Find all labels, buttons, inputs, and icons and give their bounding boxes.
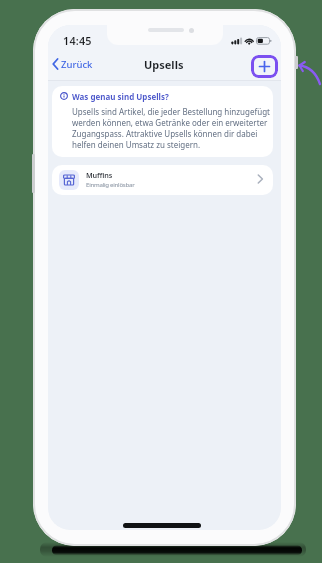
- staticText: Muffins: [86, 170, 113, 180]
- button[interactable]: [251, 55, 278, 78]
- staticText: Upsells: [144, 57, 184, 72]
- staticText: Zurück: [61, 58, 93, 71]
- staticText: Einmalig einlösbar: [86, 180, 135, 188]
- staticText: Upsells sind Artikel, die jeder Bestellu…: [72, 106, 270, 150]
- button[interactable]: Muffins: [52, 165, 273, 195]
- button[interactable]: Zurück: [50, 56, 98, 72]
- staticText: Was genau sind Upsells?: [72, 91, 169, 102]
- staticText: 14:45: [63, 33, 92, 48]
